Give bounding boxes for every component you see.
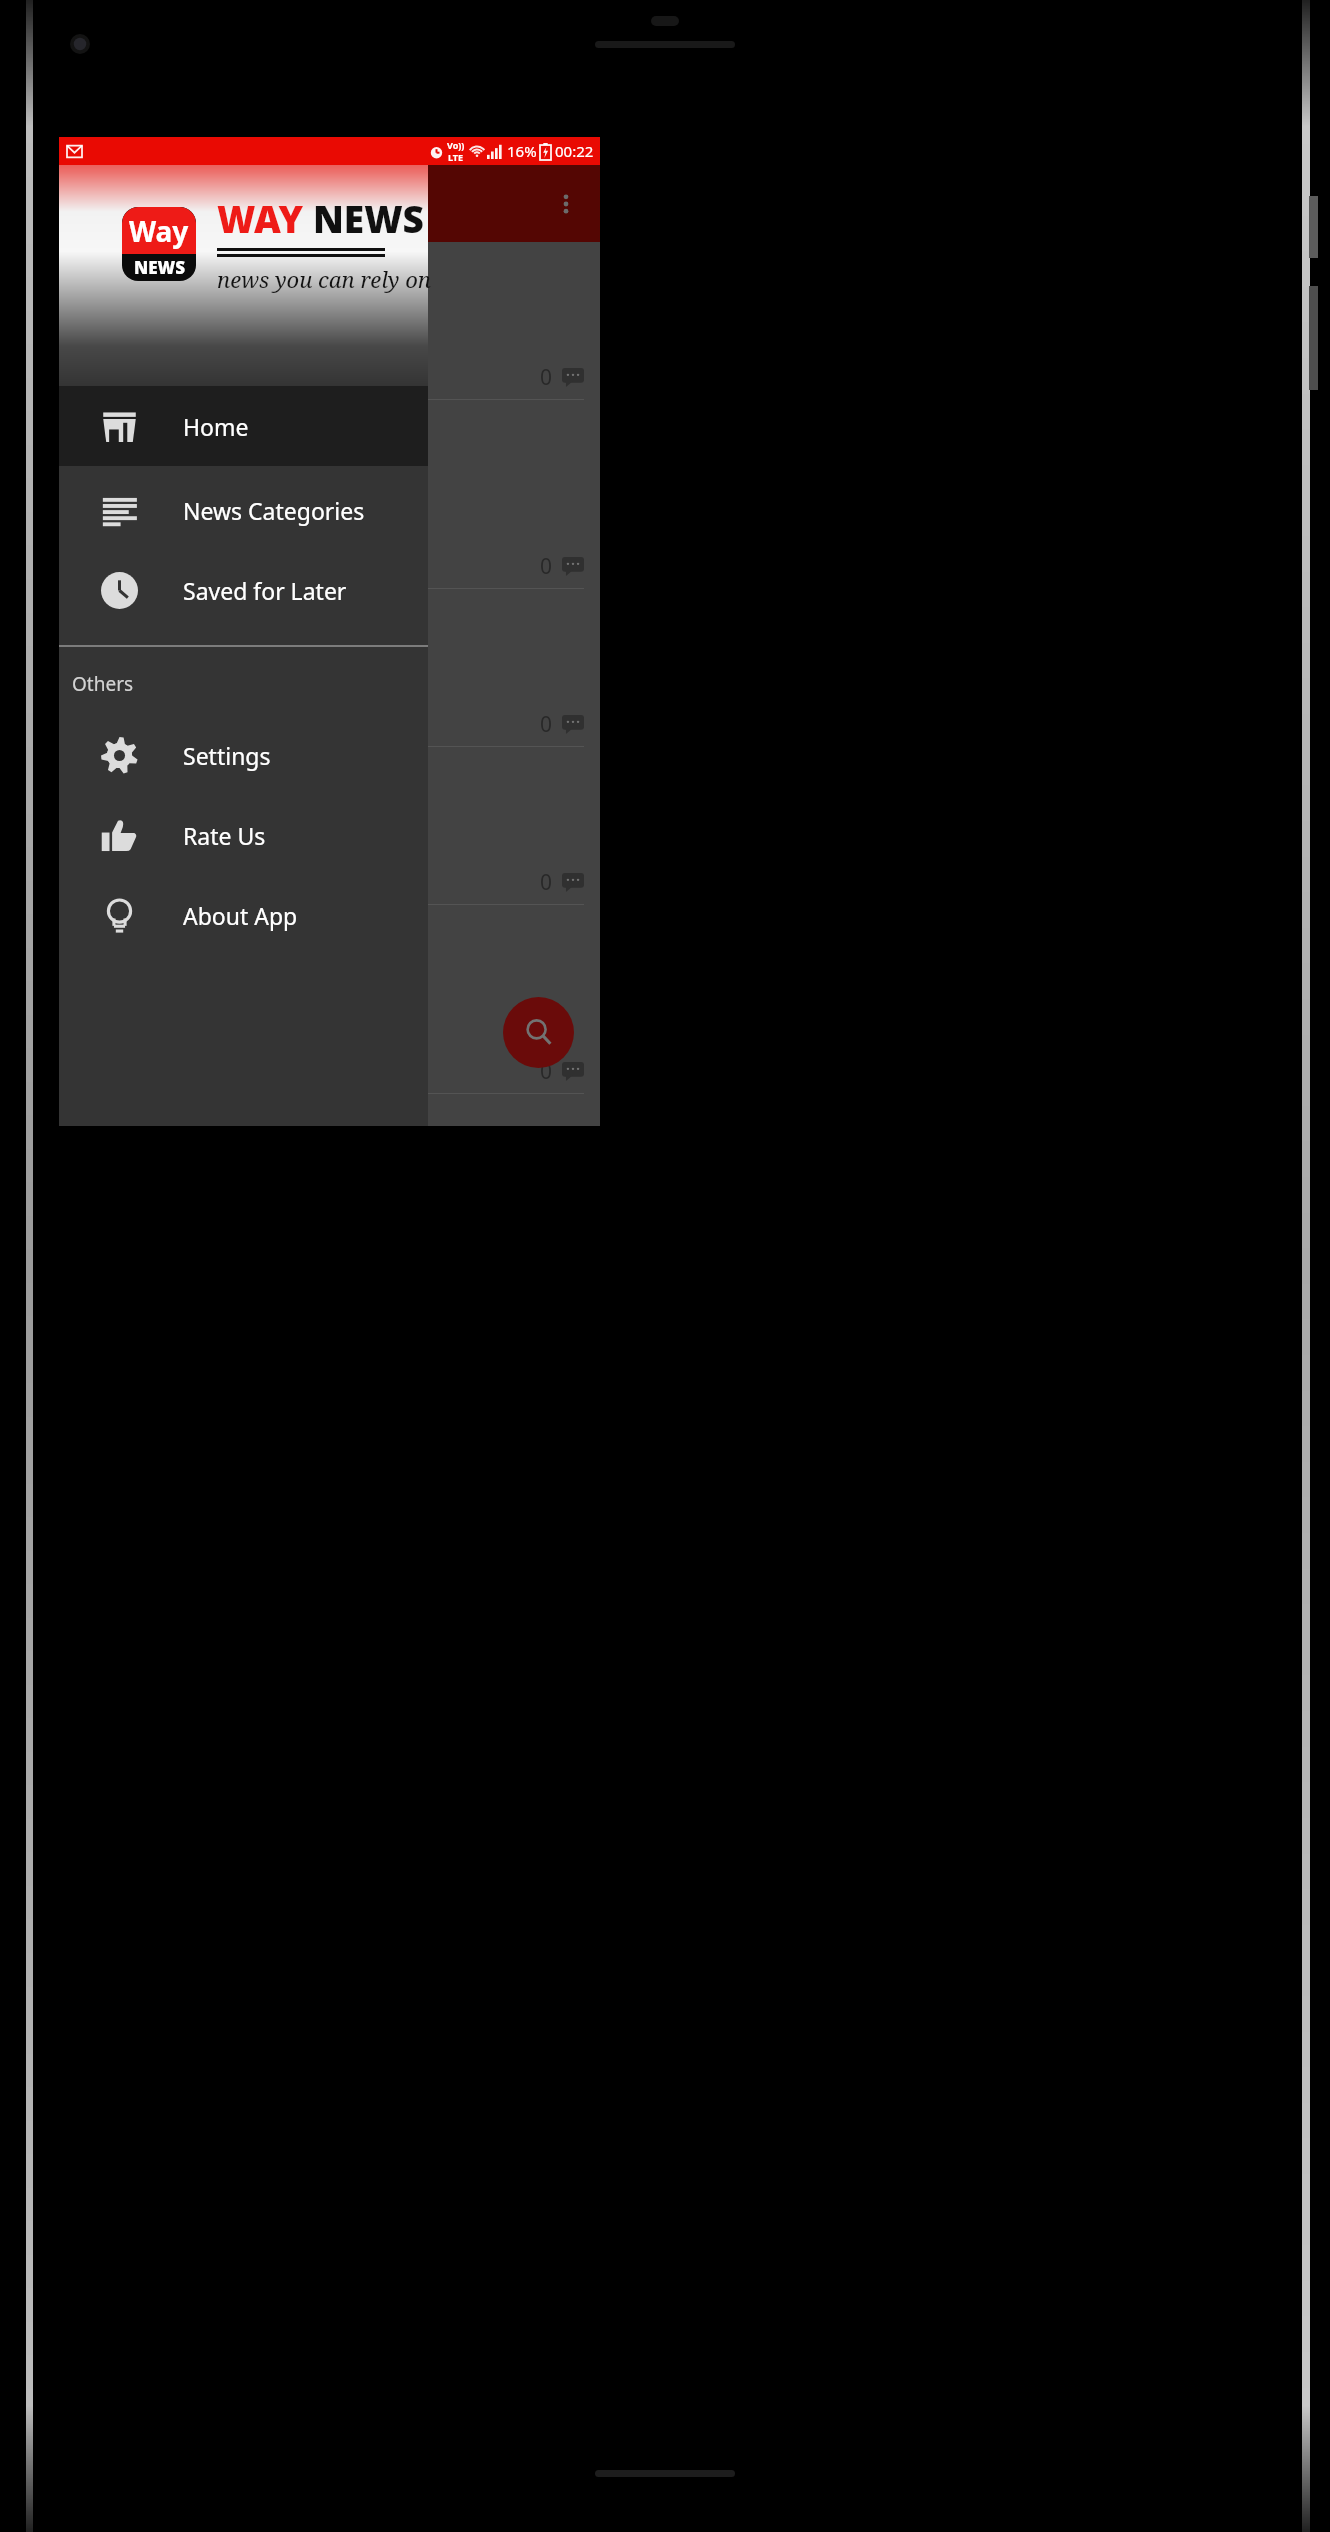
- staticText: ान बड़े नेताओं के: [75, 760, 236, 791]
- staticText: NEWS: [313, 193, 424, 243]
- staticText: Saved for Later: [183, 575, 347, 606]
- staticText: Rate Us: [183, 820, 266, 851]
- staticText: 00:22: [555, 141, 594, 161]
- staticText: 0: [540, 710, 553, 739]
- button[interactable]: About App: [59, 875, 428, 955]
- button[interactable]: Rate Us: [59, 795, 428, 875]
- button[interactable]: Home: [59, 386, 428, 466]
- button[interactable]: Search: [503, 997, 574, 1068]
- staticText: About App: [183, 900, 298, 931]
- staticText: छ दिन पहले ही खुद ने के संकेत दिए थे यह: [75, 297, 238, 355]
- staticText: 0: [540, 868, 553, 897]
- button[interactable]: More options: [542, 180, 590, 228]
- staticText: 0: [540, 1057, 553, 1086]
- staticText: Settings: [183, 740, 271, 771]
- staticText: Vo)): [447, 139, 465, 151]
- staticText: Home: [183, 411, 249, 442]
- staticText: NEWS: [134, 256, 185, 279]
- staticText: 16%: [507, 141, 537, 161]
- button[interactable]: ों का पैसा नहीं डूबेगा भा से भी पास हुआ: [59, 905, 600, 1094]
- button[interactable]: News Categories: [59, 470, 428, 550]
- staticText: News Categories: [183, 495, 365, 526]
- staticText: ो संबोधित करते समय राहुल बाबा बोलते हैं …: [75, 486, 248, 544]
- staticText: news you can rely on: [217, 264, 431, 294]
- staticText: दिखाने को तैयार अभी: [75, 255, 270, 286]
- button[interactable]: Settings: [59, 715, 428, 795]
- button[interactable]: Saved for Later: [59, 550, 428, 630]
- staticText: 0: [540, 363, 553, 392]
- staticText: ों का पैसा नहीं डूबेगा भा से भी पास हुआ: [75, 918, 266, 980]
- staticText: WAY: [217, 193, 313, 243]
- button[interactable]: ान बड़े नेताओं के: [59, 747, 600, 905]
- staticText: ा चुनाव के लिए सभी चुनाव ा था वह तारीख 3…: [75, 802, 287, 860]
- staticText: नेटेड को ऋण शोधन की के द्वारा अधिग्रहण क…: [75, 644, 261, 702]
- staticText: थ इन बैंकों ने भी दिया: [75, 602, 268, 633]
- staticText: 0: [540, 552, 553, 581]
- staticText: भाई लगते हैं चुन-चुन त शाह: [75, 413, 256, 475]
- button[interactable]: थ इन बैंकों ने भी दिया: [59, 589, 600, 747]
- button[interactable]: भाई लगते हैं चुन-चुन त शाह: [59, 400, 600, 589]
- staticText: Way: [129, 212, 189, 250]
- button[interactable]: दिखाने को तैयार अभी: [59, 242, 600, 400]
- staticText: LTE: [448, 151, 464, 163]
- staticText: Others: [72, 671, 134, 697]
